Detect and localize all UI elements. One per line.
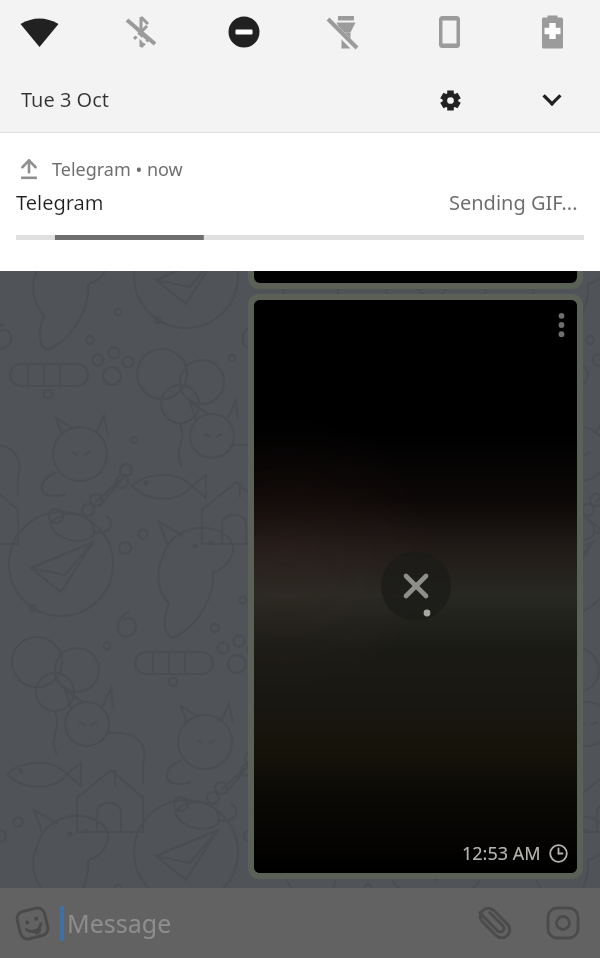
button[interactable]: More options (541, 300, 577, 336)
button[interactable]: Camera (532, 892, 594, 954)
button[interactable]: Settings (428, 78, 472, 122)
button[interactable]: Cancel upload (381, 551, 451, 621)
staticText: Telegram (16, 189, 104, 216)
button[interactable] (248, 182, 583, 289)
staticText: Sending GIF... (449, 189, 578, 216)
staticText: 12:53 AM (462, 841, 541, 866)
button[interactable]: More options (248, 294, 583, 879)
button[interactable]: Telegram • now (0, 133, 600, 271)
button[interactable]: Emoji (14, 905, 51, 942)
staticText: Telegram • now (52, 157, 183, 182)
staticText: Tue 3 Oct (21, 86, 110, 113)
button[interactable]: Expand quick settings (530, 78, 574, 122)
button[interactable]: Attach file (464, 892, 526, 954)
staticText: Message (67, 906, 172, 940)
